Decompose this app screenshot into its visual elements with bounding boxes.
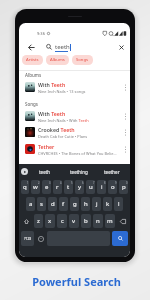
button[interactable]: f xyxy=(59,197,68,211)
staticText: y xyxy=(78,183,82,191)
button[interactable]: Search xyxy=(112,231,128,246)
staticText: e xyxy=(45,183,49,191)
button[interactable]: z xyxy=(34,214,43,228)
staticText: Albums xyxy=(25,72,42,78)
staticText: teething xyxy=(70,169,88,175)
staticText: With Teeth xyxy=(38,81,66,88)
staticText: o xyxy=(111,183,115,191)
staticText: Powerful Search xyxy=(32,274,121,289)
button[interactable]: teether xyxy=(95,164,128,179)
staticText: 7 xyxy=(93,181,95,185)
staticText: s xyxy=(40,200,43,208)
button[interactable]: v xyxy=(69,214,79,228)
button[interactable]: Tether xyxy=(19,142,130,156)
button[interactable]: Backspace xyxy=(117,214,128,228)
staticText: Tether xyxy=(38,143,55,150)
button[interactable]: Clear search xyxy=(115,41,128,54)
staticText: g xyxy=(73,200,77,208)
button[interactable]: b xyxy=(81,214,91,228)
staticText: n xyxy=(96,217,100,225)
button[interactable]: Emoji xyxy=(36,232,46,245)
staticText: CHVRCHES • The Bones of What You Belie… xyxy=(38,151,117,156)
staticText: k xyxy=(106,200,110,208)
staticText: p xyxy=(122,183,126,191)
staticText: b xyxy=(84,217,88,225)
staticText: Songs xyxy=(76,57,89,63)
staticText: v xyxy=(72,217,76,225)
button[interactable]: teething xyxy=(62,164,95,179)
staticText: Artists xyxy=(26,57,39,63)
button[interactable]: d xyxy=(48,197,57,211)
staticText: u xyxy=(89,183,93,191)
button[interactable]: j xyxy=(92,197,101,211)
button[interactable]: More suggestions xyxy=(21,168,28,175)
button[interactable]: With Teeth xyxy=(19,80,130,94)
staticText: d xyxy=(51,200,55,208)
staticText: Nine Inch Nails • 13 songs xyxy=(38,89,86,94)
staticText: 5 xyxy=(71,181,73,185)
staticText: i xyxy=(101,183,103,191)
staticText: l xyxy=(118,200,120,208)
button[interactable]: y xyxy=(75,180,84,194)
button[interactable]: teeth xyxy=(28,164,62,179)
staticText: m xyxy=(107,217,113,225)
button[interactable]: q xyxy=(21,180,29,194)
button[interactable]: g xyxy=(70,197,79,211)
staticText: ?123 xyxy=(24,236,32,241)
button[interactable]: Songs xyxy=(72,55,93,65)
staticText: 8 xyxy=(104,181,106,185)
staticText: Crooked Teeth xyxy=(38,126,75,133)
button[interactable]: a xyxy=(26,197,35,211)
staticText: 1 xyxy=(27,181,29,185)
staticText: 9:36 xyxy=(37,31,45,36)
button[interactable]: With Teeth xyxy=(19,109,130,123)
staticText: r xyxy=(56,183,59,191)
button[interactable]: Albums xyxy=(46,55,69,65)
staticText: 9 xyxy=(115,181,117,185)
staticText: Songs xyxy=(25,101,39,107)
button[interactable]: t xyxy=(64,180,73,194)
staticText: teeth xyxy=(55,43,70,51)
button[interactable]: c xyxy=(57,214,67,228)
button[interactable]: Artists xyxy=(22,55,43,65)
staticText: teether xyxy=(104,169,120,175)
staticText: f xyxy=(62,200,65,208)
button[interactable]: m xyxy=(105,214,115,228)
button[interactable]: h xyxy=(81,197,90,211)
button[interactable]: i xyxy=(97,180,106,194)
button[interactable]: o xyxy=(108,180,117,194)
staticText: Albums xyxy=(50,57,65,63)
staticText: x xyxy=(48,217,52,225)
staticText: w xyxy=(33,183,38,191)
staticText: teeth xyxy=(39,169,51,175)
staticText: t xyxy=(67,183,70,191)
button[interactable]: r xyxy=(53,180,62,194)
button[interactable]: x xyxy=(45,214,55,228)
button[interactable]: k xyxy=(103,197,112,211)
button[interactable]: u xyxy=(86,180,95,194)
button[interactable]: l xyxy=(114,197,123,211)
staticText: Nine Inch Nails • With Teeth xyxy=(38,118,89,123)
staticText: z xyxy=(37,217,40,225)
staticText: j xyxy=(96,200,98,208)
button[interactable]: n xyxy=(93,214,103,228)
button[interactable]: e xyxy=(42,180,51,194)
staticText: With Teeth xyxy=(38,110,66,117)
staticText: Death Cab for Cutie • Plans xyxy=(38,134,88,139)
button[interactable]: p xyxy=(119,180,128,194)
staticText: 3 xyxy=(49,181,51,185)
button[interactable]: Back xyxy=(25,41,38,54)
staticText: 4 xyxy=(60,181,62,185)
button[interactable]: Shift xyxy=(21,214,32,228)
button[interactable]: w xyxy=(31,180,40,194)
button[interactable]: s xyxy=(37,197,46,211)
staticText: a xyxy=(29,200,33,208)
staticText: 0 xyxy=(126,181,128,185)
button[interactable]: ?123 xyxy=(21,231,34,246)
staticText: 6 xyxy=(82,181,84,185)
button[interactable]: Crooked Teeth xyxy=(19,125,130,139)
staticText: 2 xyxy=(38,181,40,185)
staticText: h xyxy=(84,200,88,208)
staticText: c xyxy=(61,217,64,225)
